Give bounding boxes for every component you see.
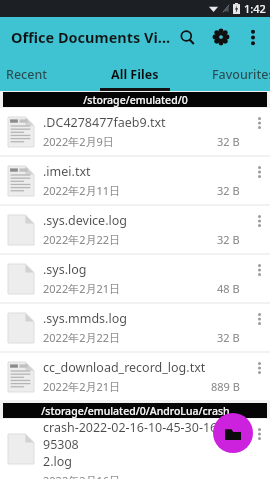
staticText: 32 B [217,134,240,149]
button[interactable]: Item options [248,255,270,302]
staticText: /storage/emulated/0/AndroLua/crash [41,404,230,418]
staticText: .imei.txt [43,163,91,180]
staticText: 2022年2月16日 [43,473,121,479]
button[interactable]: Item options [248,353,270,400]
button[interactable]: All Files [95,57,175,91]
button[interactable]: .DC4278477faeb9.txt [0,108,270,155]
button[interactable]: Settings [204,20,238,54]
button[interactable]: Recent [0,57,78,91]
button[interactable]: .sys.log [0,255,270,302]
staticText: 889 B [211,379,240,394]
staticText: Recent [6,66,48,83]
button[interactable]: .sys.mmds.log [0,304,270,351]
staticText: 2022年2月11日 [43,183,121,198]
staticText: 2022年2月9日 [43,134,114,149]
staticText: crash-2022-02-16-10-45-30-16449795308 2.… [43,419,248,470]
button[interactable]: .imei.txt [0,157,270,204]
staticText: 2022年2月22日 [43,232,121,247]
button[interactable]: cc_download_record_log.txt [0,353,270,400]
button[interactable]: Search [170,20,204,54]
button[interactable]: Item options [248,157,270,204]
staticText: Favourites [212,66,270,83]
button[interactable]: Item options [248,304,270,351]
staticText: cc_download_record_log.txt [43,359,206,376]
staticText: 1:42 [244,1,266,16]
button[interactable]: More options [238,22,268,52]
button[interactable]: Item options [248,206,270,253]
staticText: 2022年2月21日 [43,281,121,296]
staticText: 48 B [217,281,240,296]
staticText: 32 B [217,183,240,198]
button[interactable]: .sys.device.log [0,206,270,253]
staticText: .sys.device.log [43,212,127,229]
button[interactable]: Item options [248,108,270,155]
button[interactable]: Item options [248,419,270,479]
staticText: 2022年2月21日 [43,379,121,394]
staticText: Office Documents Vi... [11,27,171,47]
button[interactable]: /storage/emulated/0 [3,92,267,107]
button[interactable]: /storage/emulated/0/AndroLua/crash [3,403,267,418]
staticText: 2022年2月22日 [43,330,121,345]
staticText: /storage/emulated/0 [83,93,188,107]
staticText: 32 B [217,232,240,247]
button[interactable]: Favourites [192,57,270,91]
staticText: All Files [111,66,159,83]
staticText: 32 B [217,330,240,345]
button[interactable]: crash-2022-02-16-10-45-30-16449795308 2.… [0,419,270,479]
staticText: .DC4278477faeb9.txt [43,114,166,131]
staticText: .sys.mmds.log [43,310,127,327]
staticText: .sys.log [43,261,87,278]
button[interactable]: New folder [213,413,253,453]
